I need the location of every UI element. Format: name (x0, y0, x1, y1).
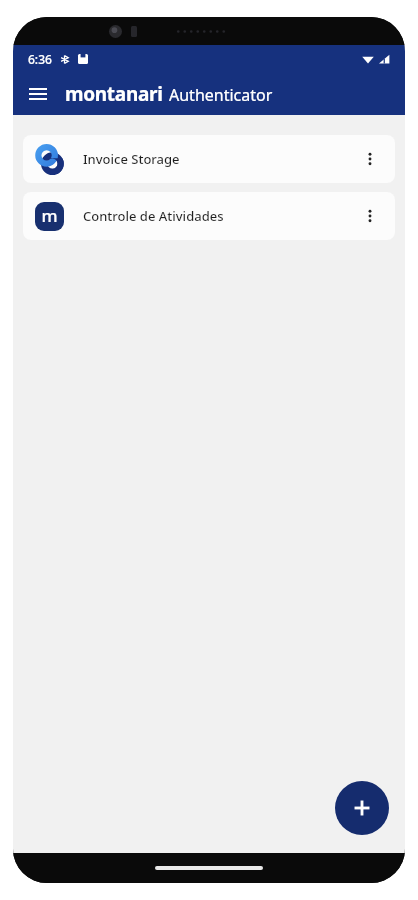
staticText: montanari (65, 81, 163, 107)
staticText: m (41, 204, 58, 227)
button[interactable]: Open navigation menu (19, 75, 57, 113)
staticText: Invoice Storage (83, 150, 355, 168)
button[interactable]: m (23, 192, 395, 240)
staticText: Authenticator (169, 84, 273, 106)
button[interactable]: More options for Controle de Atividades (355, 201, 385, 231)
staticText: Controle de Atividades (83, 207, 355, 225)
button[interactable]: More options for Invoice Storage (355, 144, 385, 174)
button[interactable]: Invoice Storage (23, 135, 395, 183)
button[interactable]: Add account (335, 781, 389, 835)
staticText: 6:36 (28, 51, 52, 67)
